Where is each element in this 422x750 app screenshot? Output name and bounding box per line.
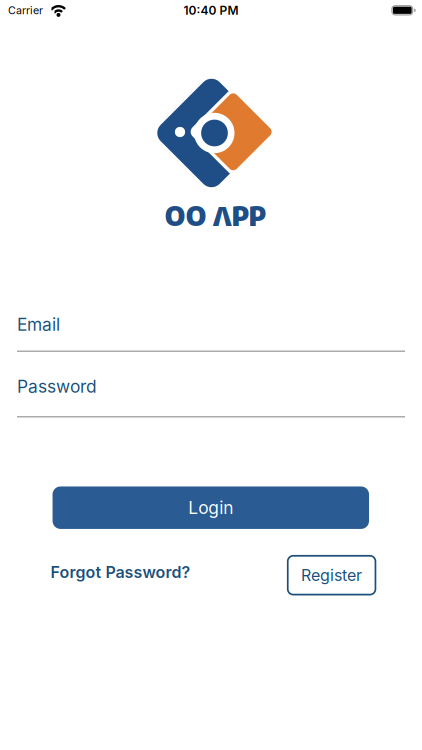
- staticText: Register: [301, 566, 362, 585]
- button[interactable]: Login: [53, 486, 369, 529]
- staticText: OO ΛPP: [165, 197, 266, 234]
- staticText: Carrier: [8, 4, 43, 17]
- staticText: 10:40 PM: [183, 3, 238, 18]
- button[interactable]: Forgot Password?: [50, 563, 190, 582]
- button[interactable]: Register: [287, 555, 376, 595]
- staticText: Forgot Password?: [50, 563, 190, 582]
- staticText: Email: [17, 314, 60, 335]
- staticText: Password: [17, 376, 97, 397]
- staticText: Login: [188, 497, 233, 518]
